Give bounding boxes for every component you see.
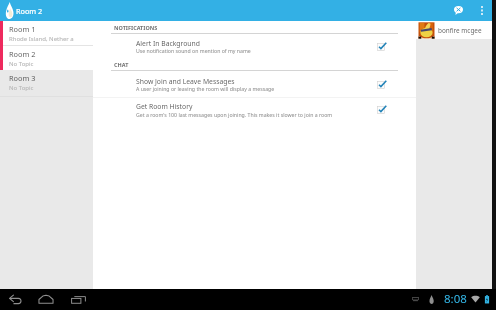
staticText: bonfire mcgee	[438, 26, 482, 35]
button[interactable]: Recents	[66, 289, 90, 309]
button[interactable]: bonfire mcgee	[416, 21, 492, 39]
staticText: Room 1	[9, 24, 36, 34]
button[interactable]: Alert In Background	[93, 34, 416, 56]
staticText: NOTIFICATIONS	[114, 24, 158, 31]
button[interactable]: Room 2	[0, 46, 93, 70]
button[interactable]: Show Join and Leave Messages	[93, 72, 416, 94]
staticText: CHAT	[114, 61, 129, 68]
button[interactable]: Leave room	[448, 0, 468, 21]
staticText: Show Join and Leave Messages	[136, 77, 235, 86]
staticText: Rhode Island, Nether a	[9, 35, 74, 43]
staticText: Room 3	[9, 73, 36, 83]
staticText: 8:08	[444, 291, 467, 307]
staticText: Get a room's 100 last messages upon join…	[136, 111, 333, 118]
staticText: No Topic	[9, 60, 34, 68]
button[interactable]: Room 1	[0, 21, 93, 45]
staticText: Get Room History	[136, 102, 193, 111]
button[interactable]: Home	[34, 289, 58, 309]
button[interactable]: Room 3	[0, 70, 93, 96]
staticText: No Topic	[9, 84, 34, 92]
staticText: A user joining or leaving the room will …	[136, 85, 275, 92]
staticText: Room 2	[16, 6, 43, 16]
staticText: Room 2	[9, 49, 36, 59]
button[interactable]: Back	[3, 289, 27, 309]
button[interactable]: Get Room History	[93, 97, 416, 119]
staticText: Use notification sound on mention of my …	[136, 47, 251, 54]
staticText: Alert In Background	[136, 39, 200, 48]
button[interactable]: More options	[475, 0, 489, 21]
